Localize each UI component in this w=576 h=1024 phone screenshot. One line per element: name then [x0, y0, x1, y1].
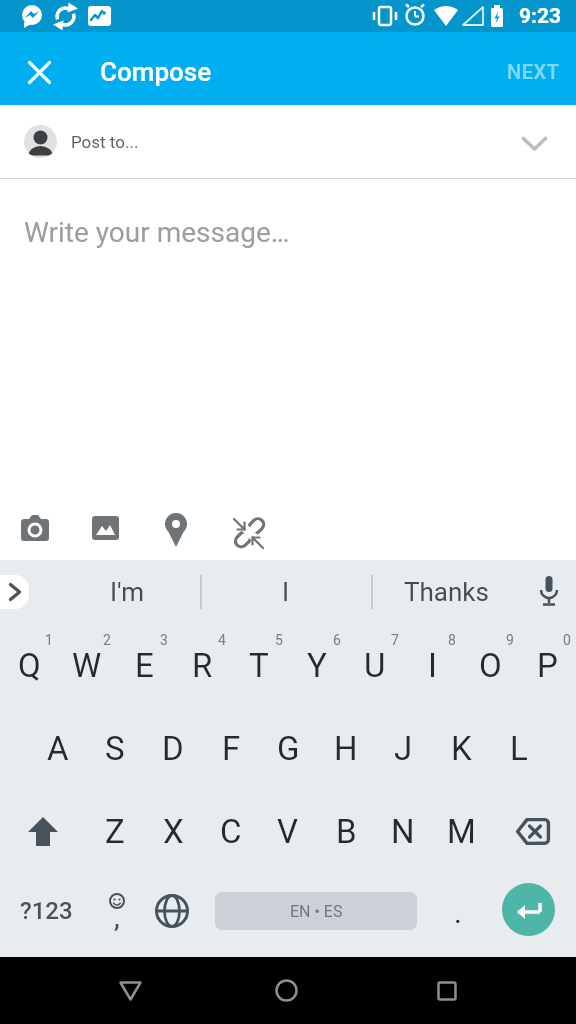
staticText: ?123	[20, 897, 73, 925]
staticText: Write your message…	[24, 216, 290, 249]
button[interactable]: F	[202, 707, 260, 790]
staticText: Q	[18, 646, 41, 685]
button[interactable]	[20, 511, 50, 545]
button[interactable]: I	[201, 560, 370, 624]
button[interactable]	[490, 790, 576, 873]
staticText: 5	[275, 632, 283, 648]
button[interactable]: U	[346, 624, 404, 707]
button[interactable]: M	[432, 790, 490, 873]
button[interactable]: D	[144, 707, 202, 790]
staticText: Z	[105, 812, 125, 851]
staticText: 3	[160, 632, 168, 648]
button[interactable]: Q	[0, 624, 58, 707]
button[interactable]	[161, 511, 191, 549]
button[interactable]: Z	[86, 790, 144, 873]
button[interactable]	[106, 957, 154, 1024]
button[interactable]: ,	[92, 869, 142, 953]
button[interactable]: ?123	[0, 869, 92, 953]
button[interactable]: E	[115, 624, 173, 707]
button[interactable]: EN • ES	[215, 892, 417, 930]
staticText: .	[454, 895, 462, 930]
button[interactable]	[90, 511, 120, 545]
button[interactable]	[0, 575, 29, 609]
button[interactable]: L	[490, 707, 548, 790]
staticText: 0	[563, 632, 571, 648]
staticText: X	[163, 812, 184, 851]
staticText: A	[47, 729, 69, 768]
button[interactable]: G	[259, 707, 317, 790]
staticText: N	[391, 812, 415, 851]
staticText: L	[510, 729, 528, 768]
button[interactable]	[262, 957, 310, 1024]
staticText: 7	[391, 632, 399, 648]
staticText: D	[162, 729, 184, 768]
button[interactable]	[23, 56, 55, 88]
staticText: T	[249, 646, 269, 685]
staticText: Y	[307, 646, 327, 685]
staticText: 2	[103, 632, 111, 648]
staticText: I	[282, 577, 290, 607]
button[interactable]	[531, 572, 567, 612]
button[interactable]	[423, 957, 471, 1024]
staticText: K	[451, 729, 472, 768]
button[interactable]: I'm	[49, 560, 205, 624]
button[interactable]: J	[374, 707, 432, 790]
button[interactable]: B	[317, 790, 375, 873]
staticText: R	[192, 646, 213, 685]
staticText: E	[135, 646, 154, 685]
staticText: 6	[333, 632, 341, 648]
staticText: Post to...	[71, 132, 139, 152]
staticText: F	[222, 729, 241, 768]
staticText: 4	[218, 632, 226, 648]
button[interactable]: C	[202, 790, 260, 873]
staticText: NEXT	[507, 60, 560, 83]
staticText: Thanks	[404, 577, 489, 607]
button[interactable]: W	[58, 624, 116, 707]
staticText: J	[394, 729, 413, 768]
staticText: W	[72, 646, 102, 685]
button[interactable]: N	[374, 790, 432, 873]
button[interactable]: P	[518, 624, 576, 707]
button[interactable]	[142, 869, 202, 953]
staticText: H	[334, 729, 358, 768]
staticText: S	[105, 729, 125, 768]
button[interactable]: H	[317, 707, 375, 790]
staticText: 8	[448, 632, 456, 648]
button[interactable]: .	[430, 869, 486, 953]
staticText: I'm	[110, 577, 145, 607]
button[interactable]: R	[173, 624, 231, 707]
button[interactable]: A	[29, 707, 87, 790]
staticText: O	[479, 646, 502, 685]
button[interactable]	[502, 883, 555, 936]
staticText: C	[220, 812, 242, 851]
staticText: U	[364, 646, 386, 685]
staticText: 9:23	[519, 4, 562, 29]
button[interactable]: I	[403, 624, 461, 707]
staticText: M	[447, 812, 476, 851]
button[interactable]: S	[86, 707, 144, 790]
button[interactable]: Thanks	[372, 560, 520, 624]
staticText: P	[537, 646, 558, 685]
button[interactable]: T	[230, 624, 288, 707]
button[interactable]: O	[461, 624, 519, 707]
button[interactable]: Post to...	[0, 105, 576, 178]
staticText: G	[277, 729, 300, 768]
button[interactable]: X	[144, 790, 202, 873]
staticText: B	[336, 812, 357, 851]
staticText: ,	[114, 903, 120, 933]
button[interactable]: K	[432, 707, 490, 790]
button[interactable]: V	[259, 790, 317, 873]
staticText: 9	[506, 632, 514, 648]
button[interactable]	[0, 790, 86, 873]
staticText: EN • ES	[290, 902, 343, 921]
staticText: I	[428, 646, 437, 685]
button[interactable]: NEXT	[507, 60, 560, 83]
staticText: Compose	[100, 57, 212, 87]
button[interactable]: Y	[288, 624, 346, 707]
staticText: 1	[45, 632, 53, 648]
staticText: V	[277, 812, 299, 851]
button[interactable]	[227, 511, 267, 555]
